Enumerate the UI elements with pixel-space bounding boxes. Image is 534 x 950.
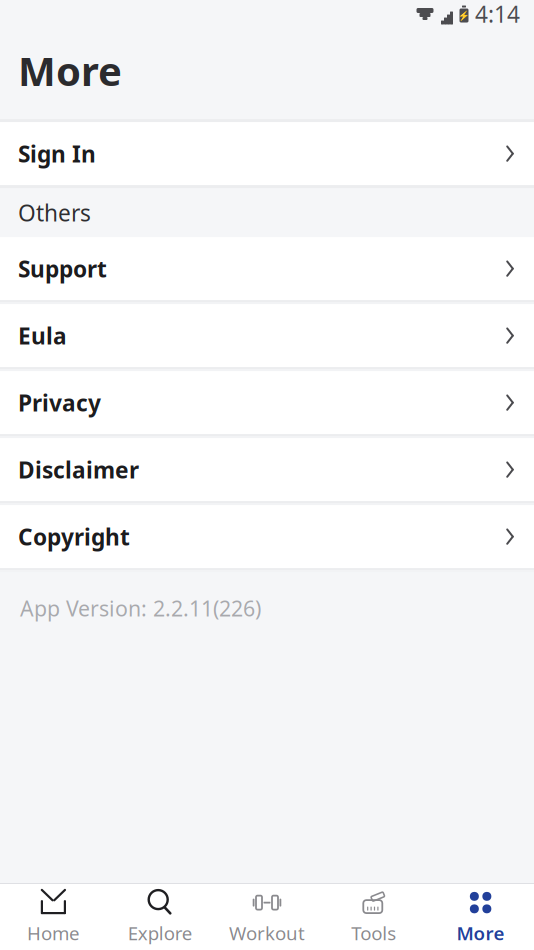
staticText: 4:14 xyxy=(475,0,520,29)
button[interactable]: Tools xyxy=(320,884,427,950)
button[interactable]: Home xyxy=(0,884,107,950)
staticText: More xyxy=(18,44,122,97)
staticText: Privacy xyxy=(18,388,101,418)
staticText: Explore xyxy=(128,921,193,945)
button[interactable]: Privacy xyxy=(0,371,534,434)
staticText: More xyxy=(457,921,505,945)
button[interactable]: Workout xyxy=(214,884,320,950)
button[interactable]: Disclaimer xyxy=(0,438,534,501)
button[interactable]: More xyxy=(427,884,534,950)
staticText: Tools xyxy=(351,921,396,945)
button[interactable]: Copyright xyxy=(0,505,534,568)
staticText: Others xyxy=(18,198,91,228)
button[interactable]: Eula xyxy=(0,304,534,367)
staticText: Support xyxy=(18,254,107,284)
staticText: App Version: 2.2.11(226) xyxy=(20,594,261,622)
button[interactable]: Explore xyxy=(107,884,214,950)
staticText: Eula xyxy=(18,321,67,351)
staticText: Disclaimer xyxy=(18,455,139,485)
button[interactable]: Support xyxy=(0,237,534,300)
staticText: Workout xyxy=(229,921,305,945)
staticText: Copyright xyxy=(18,522,130,552)
staticText: Sign In xyxy=(18,139,96,169)
staticText: ⚡ xyxy=(458,10,470,21)
staticText: Home xyxy=(27,921,80,945)
button[interactable]: Sign In xyxy=(0,122,534,185)
